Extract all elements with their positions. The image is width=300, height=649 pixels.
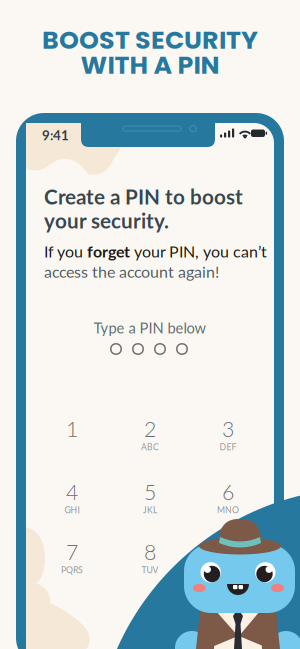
staticText: 5	[144, 479, 156, 505]
staticText: 2	[144, 416, 156, 442]
staticText: BOOST SECURITY	[42, 22, 258, 58]
staticText: ABC	[141, 442, 159, 452]
staticText: Create a PIN to boost	[44, 184, 243, 209]
button[interactable]: 3	[193, 412, 263, 456]
button[interactable]: 1	[37, 412, 107, 456]
staticText: TUV	[141, 565, 158, 575]
staticText: access the account again!	[44, 262, 219, 281]
staticText: JKL	[143, 505, 157, 515]
staticText: PQRS	[61, 565, 83, 575]
button[interactable]: 2	[115, 412, 185, 456]
staticText: 6	[222, 479, 234, 505]
staticText: Type a PIN below	[93, 319, 206, 337]
button[interactable]: 6	[193, 475, 263, 519]
staticText: If you forget your PIN, you can’t	[44, 242, 267, 261]
button[interactable]: 8	[115, 535, 185, 579]
staticText: GHI	[64, 505, 79, 515]
staticText: 8	[144, 539, 156, 565]
button[interactable]: 7	[37, 535, 107, 579]
staticText: 9	[222, 539, 234, 565]
staticText: 9:41	[42, 127, 69, 143]
button[interactable]: 4	[37, 475, 107, 519]
staticText: 3	[222, 416, 234, 442]
staticText: WITH A PIN	[80, 47, 219, 83]
staticText: 7	[66, 539, 78, 565]
staticText: 4	[66, 479, 78, 505]
staticText: your security.	[44, 208, 169, 233]
staticText: MNO	[217, 505, 239, 515]
button[interactable]: 5	[115, 475, 185, 519]
button[interactable]: 9	[193, 535, 263, 579]
staticText: WXYZ	[215, 565, 240, 575]
staticText: 1	[66, 416, 78, 442]
staticText: DEF	[219, 442, 236, 452]
